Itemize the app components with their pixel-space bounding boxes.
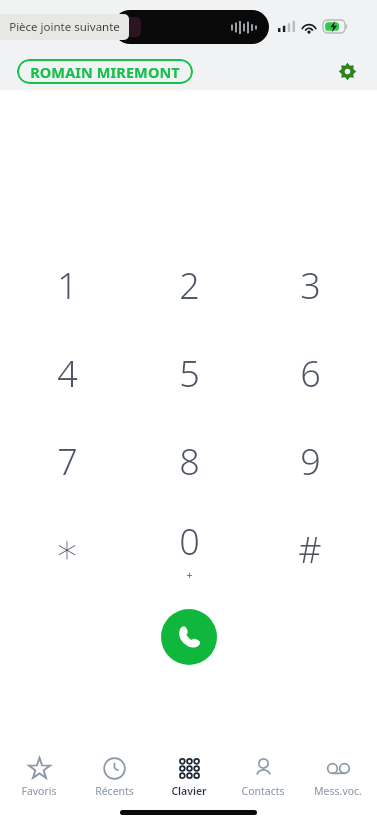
- button[interactable]: 1: [12, 245, 122, 325]
- button[interactable]: Récents: [78, 754, 150, 801]
- staticText: 9: [300, 437, 321, 486]
- button[interactable]: Mess.voc.: [302, 754, 374, 801]
- staticText: Favoris: [21, 784, 57, 798]
- staticText: +: [186, 567, 193, 582]
- staticText: 7: [57, 437, 78, 486]
- button[interactable]: Réglages: [329, 53, 365, 89]
- button[interactable]: 9: [255, 421, 365, 501]
- staticText: ROMAIN MIREMONT: [30, 62, 180, 82]
- staticText: 4: [57, 349, 78, 398]
- staticText: 3: [300, 261, 321, 310]
- staticText: Récents: [95, 784, 134, 798]
- button[interactable]: 3: [255, 245, 365, 325]
- button[interactable]: #: [255, 509, 365, 589]
- button[interactable]: ROMAIN MIREMONT: [17, 59, 193, 84]
- button[interactable]: Clavier: [153, 754, 225, 801]
- button[interactable]: ∗: [12, 509, 122, 589]
- staticText: Mess.voc.: [314, 784, 362, 798]
- staticText: ∗: [54, 526, 80, 573]
- button[interactable]: Contacts: [227, 754, 299, 801]
- staticText: 5: [179, 349, 200, 398]
- staticText: 6: [300, 349, 321, 398]
- staticText: 1: [57, 261, 78, 310]
- button[interactable]: 7: [12, 421, 122, 501]
- staticText: 8: [179, 437, 200, 486]
- staticText: 2: [179, 261, 200, 310]
- button[interactable]: 8: [134, 421, 244, 501]
- button[interactable]: Appeler: [161, 609, 217, 665]
- button[interactable]: Favoris: [3, 754, 75, 801]
- button[interactable]: 2: [134, 245, 244, 325]
- button[interactable]: 0: [134, 509, 244, 589]
- button[interactable]: 6: [255, 333, 365, 413]
- button[interactable]: 5: [134, 333, 244, 413]
- staticText: 0: [179, 517, 200, 566]
- staticText: Pièce jointe suivante: [9, 19, 120, 35]
- staticText: Clavier: [171, 784, 207, 798]
- button[interactable]: 4: [12, 333, 122, 413]
- staticText: #: [298, 525, 322, 574]
- staticText: Contacts: [241, 784, 285, 798]
